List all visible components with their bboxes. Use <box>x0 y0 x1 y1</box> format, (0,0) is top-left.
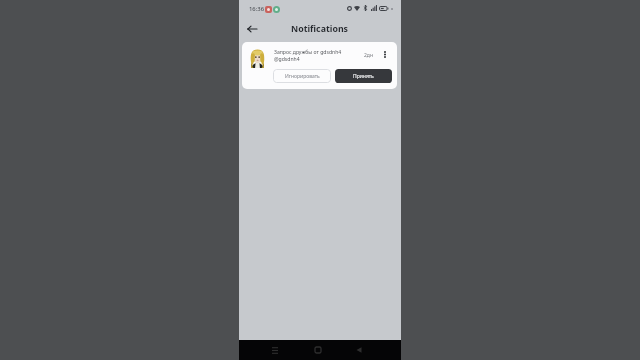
staticText: 2дн <box>364 52 373 59</box>
staticText: Принять <box>353 73 374 80</box>
button[interactable]: Принять <box>335 69 392 83</box>
button[interactable]: Recents <box>268 343 282 357</box>
button[interactable]: Home <box>311 343 325 357</box>
button[interactable]: More options <box>379 49 390 60</box>
button[interactable]: Запрос дружбы от gdsdnh4 <box>242 42 397 89</box>
staticText: 16:36 <box>249 5 265 13</box>
button[interactable]: Back <box>243 20 261 38</box>
staticText: Запрос дружбы от gdsdnh4 <box>274 49 342 56</box>
staticText: @gdsdnh4 <box>274 56 300 63</box>
staticText: Notifications <box>291 23 349 35</box>
button[interactable]: Back <box>352 343 366 357</box>
button[interactable]: Игнорировать <box>273 69 331 83</box>
staticText: Игнорировать <box>285 73 320 80</box>
